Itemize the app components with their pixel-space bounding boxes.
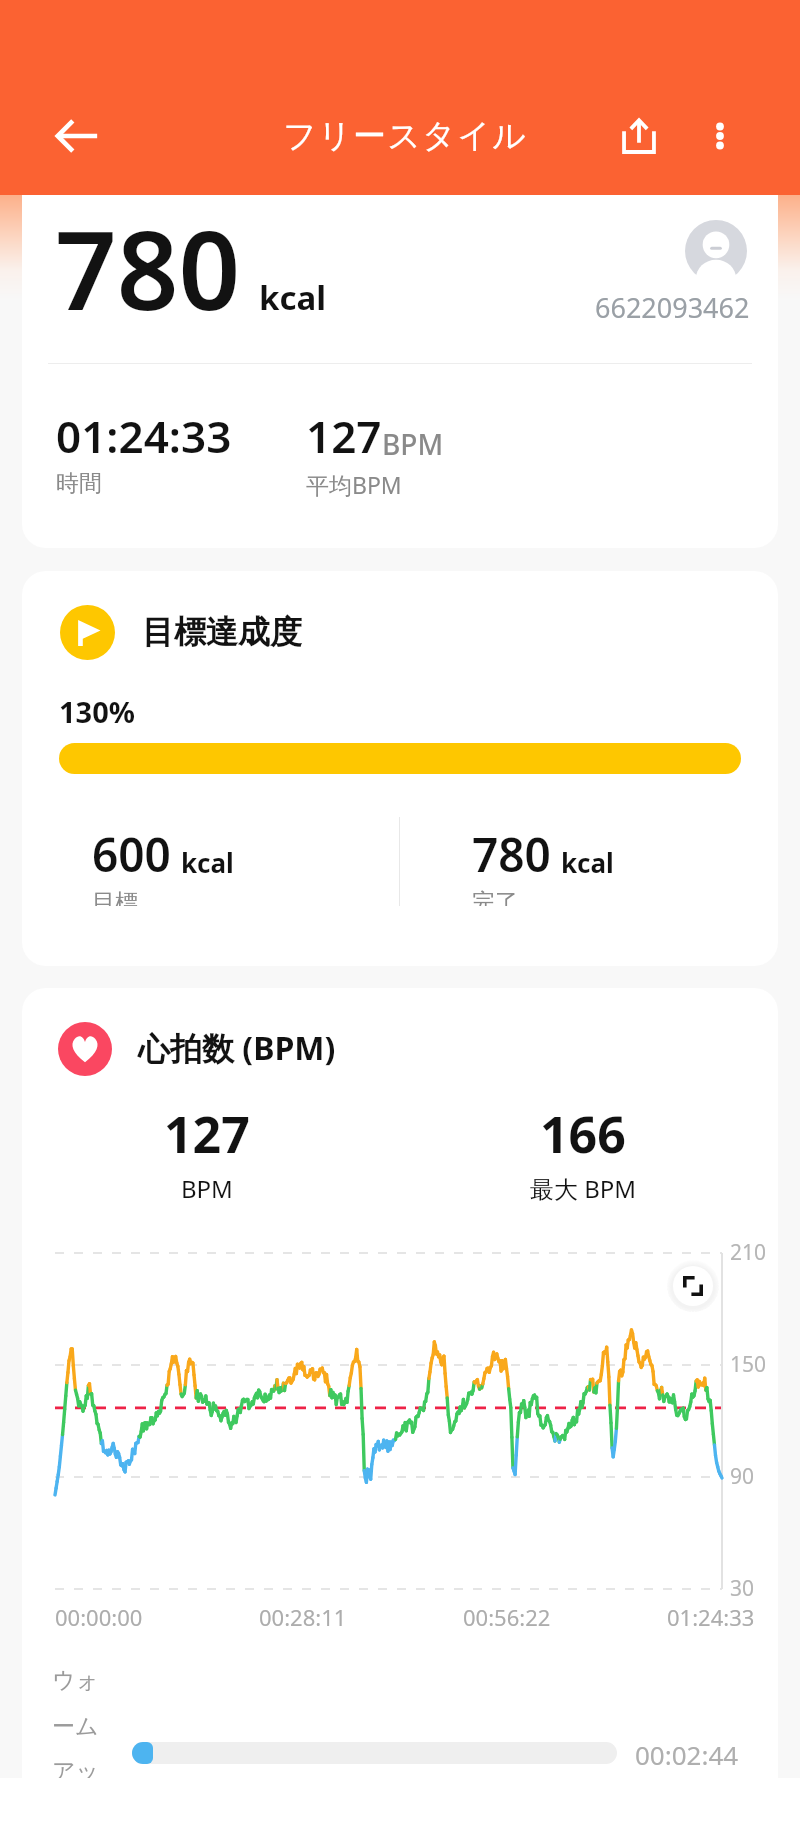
button[interactable]: Share xyxy=(603,100,675,172)
staticText: BPM xyxy=(382,425,444,463)
staticText: 127 xyxy=(164,1100,250,1168)
staticText: 166 xyxy=(540,1100,626,1168)
staticText: 目標達成度 xyxy=(142,612,302,652)
staticText: 01:24:33 xyxy=(667,1602,755,1632)
staticText: 目標 xyxy=(92,888,138,906)
button[interactable]: Fullscreen xyxy=(667,1260,719,1312)
staticText: kcal xyxy=(259,275,327,320)
staticText: BPM xyxy=(181,1172,233,1205)
staticText: kcal xyxy=(561,845,614,880)
staticText: 130% xyxy=(59,692,135,731)
staticText: 90 xyxy=(730,1462,755,1491)
staticText: 780 xyxy=(55,195,241,342)
staticText: 最大 BPM xyxy=(530,1172,637,1205)
staticText: 127 xyxy=(306,406,382,466)
staticText: 01:24:33 xyxy=(56,406,232,466)
staticText: 00:02:44 xyxy=(635,1737,739,1772)
staticText: kcal xyxy=(181,845,234,880)
staticText: 00:28:11 xyxy=(259,1602,463,1632)
staticText: 600 xyxy=(92,823,171,886)
staticText: 00:00:00 xyxy=(55,1602,259,1632)
staticText: 30 xyxy=(730,1574,755,1603)
button[interactable]: More options xyxy=(684,100,756,172)
staticText: 00:56:22 xyxy=(463,1602,667,1632)
staticText: 完了 xyxy=(472,888,518,906)
staticText: 平均BPM xyxy=(306,469,402,500)
staticText: 心拍数 (BPM) xyxy=(138,1026,336,1070)
staticText: 780 xyxy=(472,823,551,886)
staticText: フリースタイル xyxy=(283,115,528,157)
staticText: 6622093462 xyxy=(595,289,750,326)
button[interactable]: Back xyxy=(41,100,113,172)
staticText: 210 xyxy=(730,1238,767,1267)
staticText: 時間 xyxy=(56,469,102,498)
staticText: ウォームアップ xyxy=(52,1666,112,1778)
staticText: 150 xyxy=(730,1350,767,1379)
